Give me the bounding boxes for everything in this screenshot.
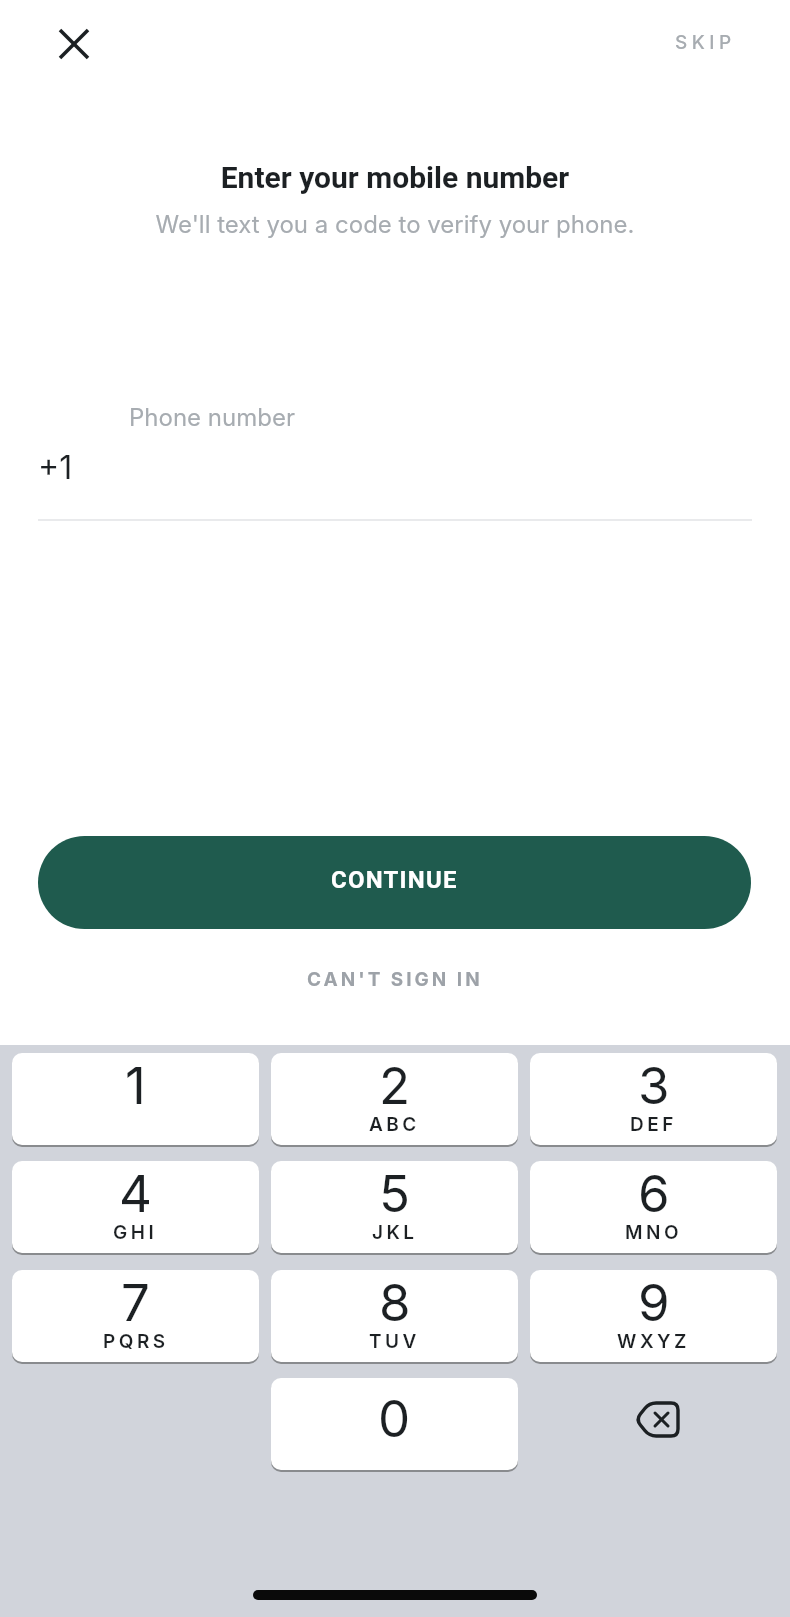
staticText: 5 [379,1163,411,1225]
button[interactable]: 4 [12,1161,259,1253]
button[interactable]: 0 [271,1378,518,1470]
staticText: Enter your mobile number [0,160,790,195]
staticText: SKIP [675,31,736,54]
button[interactable]: 8 [271,1270,518,1362]
button[interactable]: 5 [271,1161,518,1253]
staticText: Phone number [129,403,295,432]
staticText: 4 [119,1163,152,1225]
button[interactable]: 2 [271,1053,518,1145]
staticText: 9 [638,1272,670,1334]
button[interactable]: 6 [530,1161,777,1253]
button[interactable]: SKIP [660,24,750,60]
staticText: WXYZ [617,1330,691,1353]
staticText: 8 [379,1272,411,1334]
staticText: We'll text you a code to verify your pho… [0,210,790,239]
staticText: JKL [372,1221,418,1244]
staticText: 2 [379,1055,411,1117]
staticText: 6 [638,1163,670,1225]
button[interactable]: CONTINUE [38,836,751,929]
button[interactable]: 1 [12,1053,259,1145]
staticText: 7 [121,1272,150,1334]
staticText: +1 [38,448,73,487]
button[interactable] [636,1403,680,1436]
staticText: MNO [625,1221,683,1244]
staticText: 1 [125,1055,146,1117]
button[interactable]: 3 [530,1053,777,1145]
staticText: TUV [369,1330,420,1353]
button[interactable] [60,30,88,58]
button[interactable]: 9 [530,1270,777,1362]
button[interactable]: 7 [12,1270,259,1362]
staticText: GHI [113,1221,158,1244]
staticText: CONTINUE [331,866,458,894]
staticText: PQRS [103,1330,169,1353]
staticText: 3 [638,1055,670,1117]
button[interactable]: CAN'T SIGN IN [255,955,535,1003]
staticText: CAN'T SIGN IN [307,968,483,991]
staticText: DEF [630,1113,677,1136]
staticText: ABC [369,1113,420,1136]
staticText: 0 [378,1388,411,1450]
